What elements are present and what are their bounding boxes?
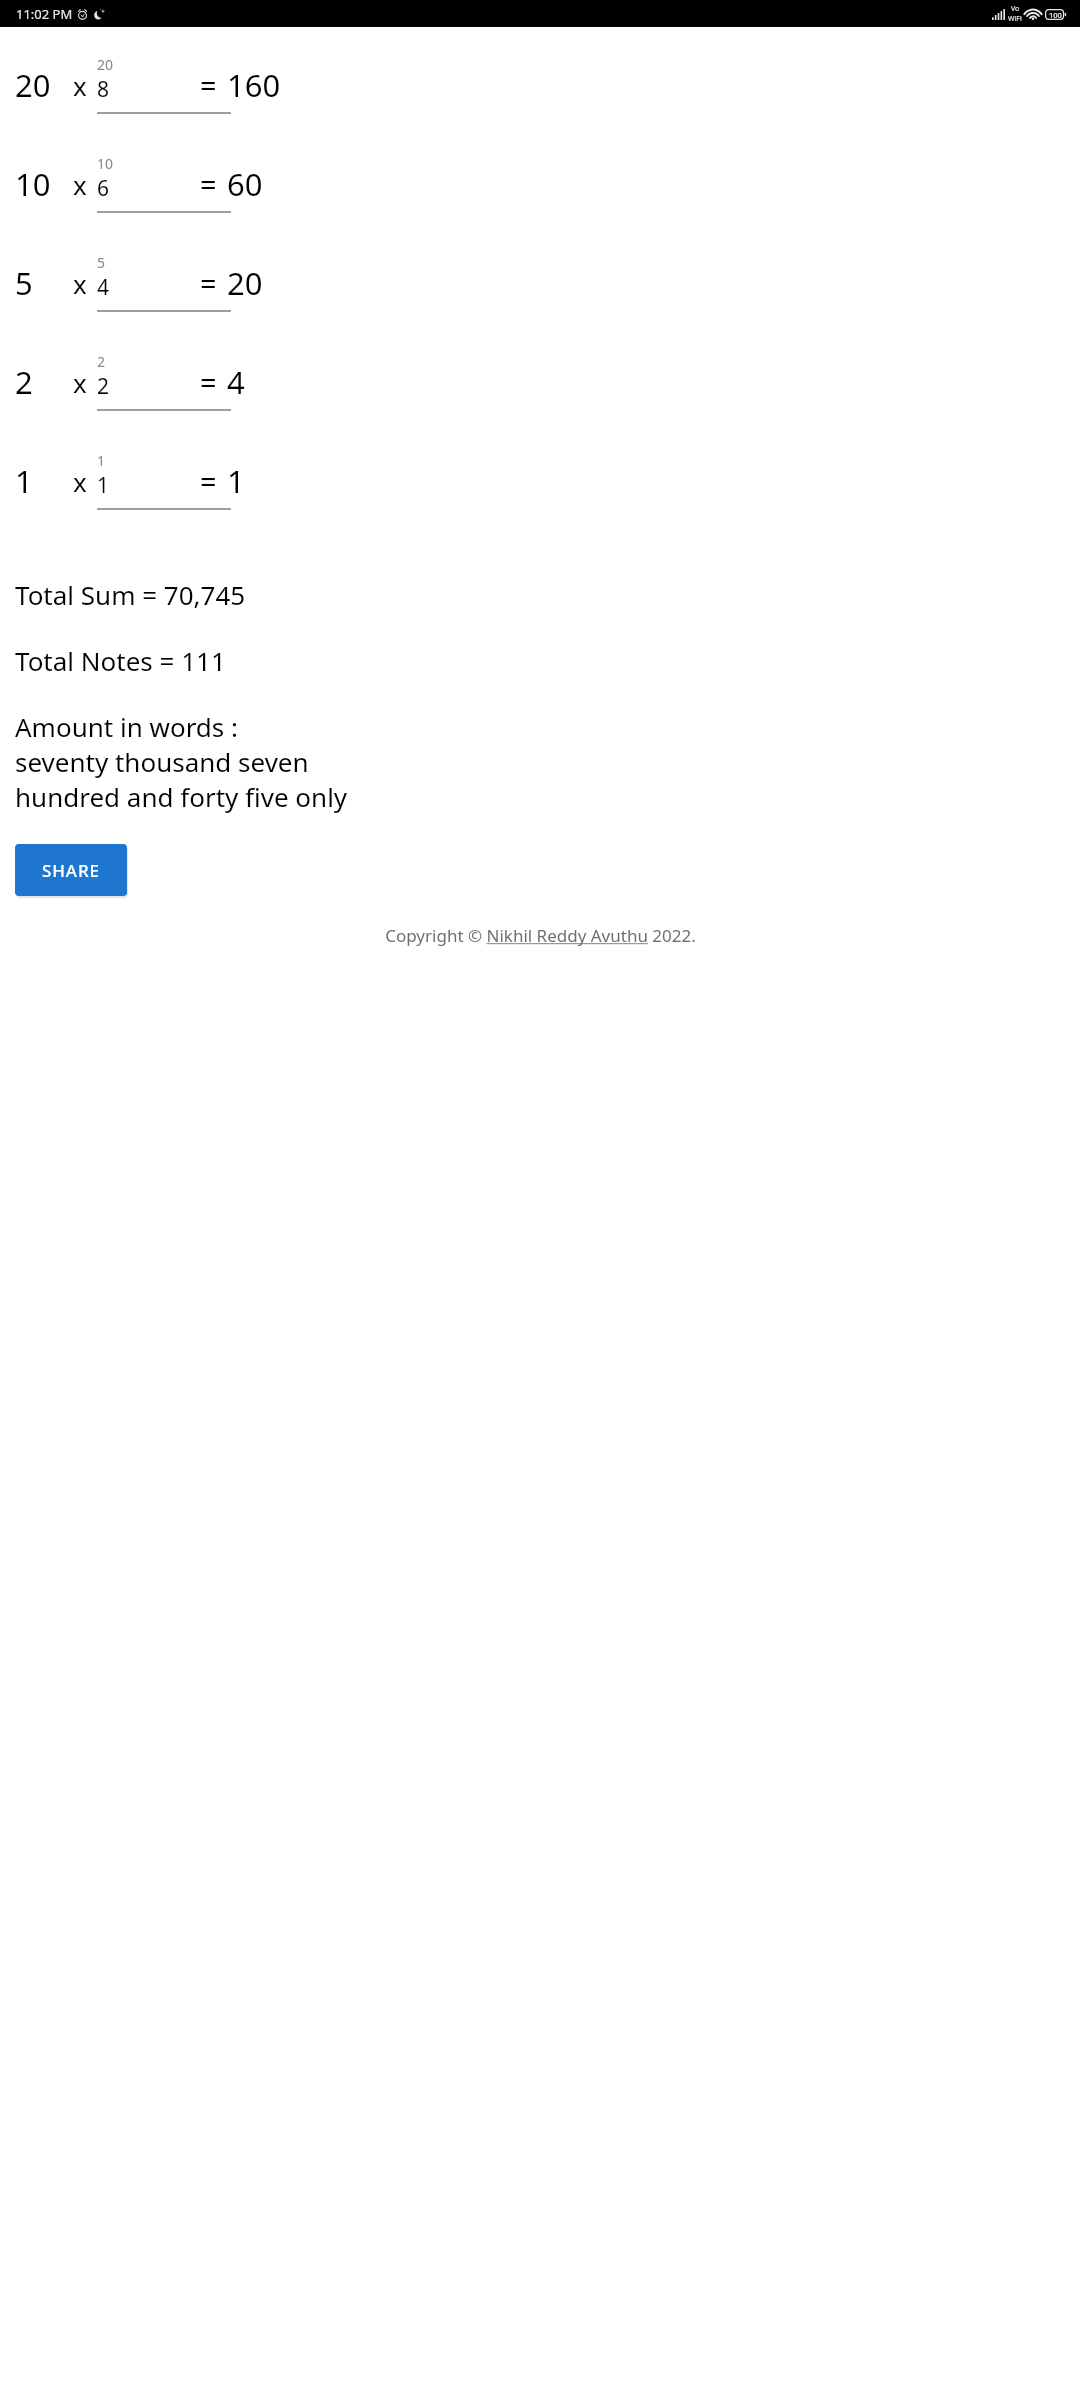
button[interactable]: 10 [97, 154, 233, 213]
staticText: 2 [15, 361, 33, 403]
staticText: SHARE [42, 859, 100, 882]
button[interactable]: 5 [97, 253, 233, 312]
staticText: 5 [97, 253, 106, 272]
staticText: 1 [97, 451, 106, 470]
staticText: x [73, 167, 87, 202]
staticText: 11:02 PM [16, 5, 73, 23]
button[interactable]: 2 [97, 352, 233, 411]
staticText: = [200, 65, 217, 104]
staticText: 60 [227, 163, 263, 205]
staticText: 2 [97, 352, 106, 371]
staticText: x [73, 365, 87, 400]
staticText: 10 [15, 163, 51, 205]
staticText: = [200, 164, 217, 203]
staticText: Copyright © Nikhil Reddy Avuthu 2022. [385, 924, 696, 947]
staticText: Amount in words : [15, 709, 1070, 744]
staticText: 10 [97, 154, 114, 173]
staticText: = [200, 263, 217, 302]
staticText: 4 [97, 273, 110, 302]
staticText: WiFi [1008, 14, 1022, 24]
staticText: 6 [97, 174, 110, 203]
button[interactable]: Copyright © Nikhil Reddy Avuthu 2022. [0, 924, 1080, 947]
staticText: 5 [15, 262, 33, 304]
staticText: x [73, 464, 87, 499]
staticText: Vo [1011, 4, 1020, 14]
staticText: Total Notes = 111 [15, 643, 1070, 678]
staticText: seventy thousand seven [15, 744, 1070, 779]
staticText: 20 [227, 262, 263, 304]
button[interactable]: 1 [97, 451, 233, 510]
staticText: 1 [227, 460, 245, 502]
staticText: x [73, 68, 87, 103]
staticText: x [73, 266, 87, 301]
button[interactable]: 20 [97, 55, 233, 114]
staticText: 1 [15, 460, 33, 502]
staticText: Total Sum = 70,745 [15, 577, 1070, 612]
staticText: hundred and forty five only [15, 779, 1070, 814]
staticText: 2 [97, 372, 110, 401]
staticText: 1 [97, 471, 110, 500]
staticText: = [200, 461, 217, 500]
staticText: 20 [15, 64, 51, 106]
staticText: 160 [227, 64, 281, 106]
staticText: 100 [1049, 10, 1062, 20]
staticText: 20 [97, 55, 114, 74]
button[interactable]: SHARE [15, 844, 127, 896]
staticText: 8 [97, 75, 110, 104]
staticText: 4 [227, 361, 245, 403]
staticText: = [200, 362, 217, 401]
